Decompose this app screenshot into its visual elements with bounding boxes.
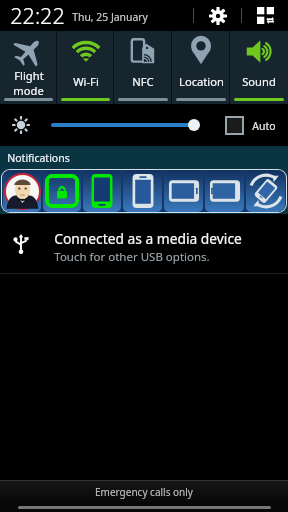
- staticText: Notifications: [7, 151, 70, 165]
- button[interactable]: Mobile data: [83, 170, 121, 212]
- staticText: Location: [179, 74, 224, 89]
- staticText: Auto: [252, 119, 276, 133]
- button[interactable]: Smart stay: [205, 170, 244, 212]
- staticText: Sound: [242, 74, 276, 89]
- button[interactable]: Brightness: [51, 113, 203, 137]
- button[interactable]: Settings: [194, 0, 241, 31]
- button[interactable]: Wi-Fi: [57, 31, 114, 104]
- button[interactable]: Connected as a media device: [0, 214, 288, 274]
- button[interactable]: Auto: [225, 116, 276, 135]
- button[interactable]: Quick settings: [242, 0, 288, 31]
- button[interactable]: Location: [172, 31, 230, 104]
- staticText: Connected as a media device: [54, 229, 242, 248]
- button[interactable]: NFC: [114, 31, 172, 104]
- button[interactable]: Flight: [0, 31, 57, 104]
- button[interactable]: Screen rotation: [246, 170, 285, 212]
- staticText: Thu, 25 January: [72, 10, 148, 24]
- staticText: Emergency calls only: [95, 485, 193, 499]
- button[interactable]: Screen lock: [43, 170, 81, 212]
- staticText: NFC: [132, 74, 154, 89]
- button[interactable]: Bluetooth: [123, 170, 162, 212]
- staticText: Flight: [14, 68, 44, 83]
- staticText: mode: [13, 83, 44, 95]
- staticText: Wi-Fi: [73, 74, 99, 89]
- button[interactable]: Profile: [3, 170, 41, 212]
- staticText: Touch for other USB options.: [54, 249, 210, 265]
- button[interactable]: Sound: [230, 31, 288, 104]
- button[interactable]: Screen mirroring: [164, 170, 203, 212]
- staticText: 22:22: [10, 1, 65, 30]
